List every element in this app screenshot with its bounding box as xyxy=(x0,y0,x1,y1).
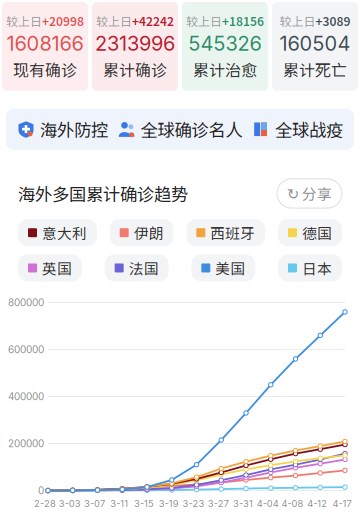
staticText: 累计治愈 xyxy=(193,58,257,81)
staticText: 较上日 xyxy=(186,12,222,29)
button[interactable]: 伊朗 xyxy=(110,219,174,246)
staticText: 较上日 xyxy=(96,12,132,29)
staticText: 全球战疫 xyxy=(275,117,343,142)
staticText: 3-31 xyxy=(233,498,253,509)
staticText: 较上日 xyxy=(6,12,42,29)
staticText: 法国 xyxy=(129,257,159,278)
staticText: 累计死亡 xyxy=(283,58,347,81)
button[interactable]: 美国 xyxy=(191,254,255,281)
staticText: 较上日 xyxy=(279,12,315,29)
staticText: 800000 xyxy=(8,296,44,309)
button[interactable]: 德国 xyxy=(278,219,342,246)
button[interactable]: 法国 xyxy=(105,254,169,281)
staticText: +18156 xyxy=(222,12,264,29)
staticText: 600000 xyxy=(8,343,44,356)
button[interactable]: 西班牙 xyxy=(186,219,265,246)
staticText: 400000 xyxy=(8,390,44,403)
staticText: 日本 xyxy=(302,257,332,278)
staticText: 545326 xyxy=(188,31,261,56)
staticText: 3-15 xyxy=(134,498,154,509)
staticText: 海外多国累计确诊趋势 xyxy=(18,181,188,206)
staticText: 3-19 xyxy=(159,498,179,509)
staticText: 3-11 xyxy=(110,498,128,509)
button[interactable]: 英国 xyxy=(18,254,82,281)
staticText: 西班牙 xyxy=(210,222,255,243)
staticText: 海外防控 xyxy=(40,117,108,142)
staticText: 0 xyxy=(38,484,44,497)
staticText: 2313996 xyxy=(95,31,175,56)
staticText: 3-03 xyxy=(59,498,81,509)
staticText: 4-08 xyxy=(281,498,303,509)
staticText: 美国 xyxy=(215,257,245,278)
staticText: 英国 xyxy=(42,257,72,278)
staticText: 累计确诊 xyxy=(103,58,167,81)
staticText: 德国 xyxy=(302,222,332,243)
staticText: 1608166 xyxy=(6,31,83,56)
staticText: 4-04 xyxy=(257,498,279,509)
staticText: +20998 xyxy=(42,12,84,29)
button[interactable]: 全球确诊名人 xyxy=(117,117,242,142)
staticText: 3-27 xyxy=(208,498,229,509)
staticText: 意大利 xyxy=(42,222,87,243)
button[interactable]: ↻ 分享 xyxy=(277,179,342,208)
button[interactable]: 海外防控 xyxy=(17,117,108,142)
button[interactable]: 较上日 xyxy=(182,2,268,91)
staticText: 4-12 xyxy=(307,498,327,509)
button[interactable]: 较上日 xyxy=(272,2,358,91)
button[interactable]: 较上日 xyxy=(2,2,88,91)
staticText: 200000 xyxy=(8,437,44,450)
button[interactable]: 较上日 xyxy=(92,2,178,91)
staticText: 伊朗 xyxy=(134,222,164,243)
staticText: ↻ 分享 xyxy=(287,183,332,204)
button[interactable]: 日本 xyxy=(278,254,342,281)
staticText: +3089 xyxy=(315,12,350,29)
staticText: 2-28 xyxy=(34,498,56,509)
button[interactable]: 意大利 xyxy=(18,219,97,246)
staticText: 4-17 xyxy=(332,498,351,509)
staticText: 现有确诊 xyxy=(13,58,77,81)
staticText: +42242 xyxy=(132,12,174,29)
button[interactable]: 全球战疫 xyxy=(252,117,343,142)
staticText: 全球确诊名人 xyxy=(140,117,242,142)
staticText: 3-23 xyxy=(182,498,204,509)
staticText: 3-07 xyxy=(84,498,105,509)
staticText: 160504 xyxy=(279,31,350,56)
